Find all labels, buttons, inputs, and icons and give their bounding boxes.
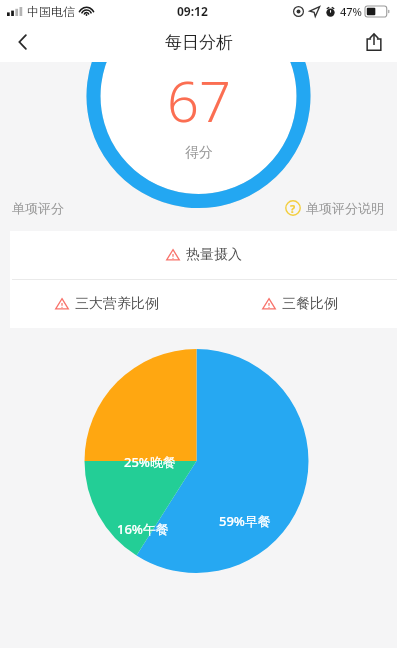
staticText: 得分	[185, 144, 213, 162]
staticText: 16%午餐	[117, 520, 169, 538]
staticText: 09:12	[177, 3, 208, 19]
button[interactable]: Back	[0, 22, 46, 62]
staticText: 三餐比例	[282, 295, 338, 313]
button[interactable]: Share	[351, 22, 397, 62]
button[interactable]: 三餐比例	[262, 295, 338, 313]
button[interactable]: 三大营养比例	[55, 295, 159, 313]
staticText: 每日分析	[165, 32, 233, 53]
staticText: 单项评分	[12, 200, 64, 216]
staticText: 中国电信	[27, 4, 75, 19]
staticText: ?	[290, 201, 296, 216]
staticText: 47%	[340, 4, 362, 19]
staticText: 热量摄入	[186, 246, 242, 264]
staticText: 25%晚餐	[124, 453, 176, 471]
staticText: 59%早餐	[219, 512, 271, 530]
staticText: 67	[167, 62, 231, 138]
button[interactable]: 热量摄入	[166, 246, 242, 264]
button[interactable]: ?	[285, 200, 384, 216]
staticText: 三大营养比例	[75, 295, 159, 313]
staticText: 单项评分说明	[306, 200, 384, 216]
